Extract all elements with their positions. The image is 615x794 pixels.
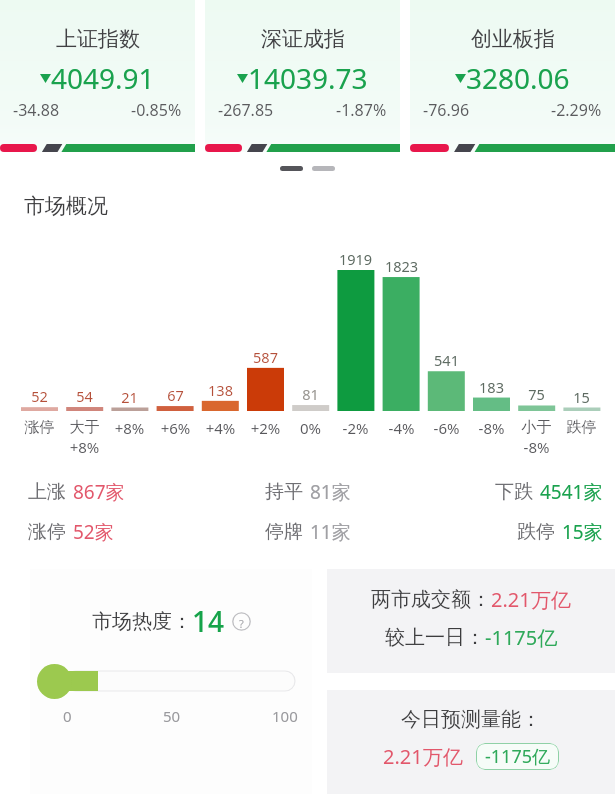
button[interactable]: 热度滑块 [36,663,73,700]
staticText: 50 [163,706,181,726]
staticText: -1.87% [336,99,387,121]
button[interactable]: 说明 [232,612,251,631]
button[interactable]: 跌停 [410,519,603,545]
staticText: 14 [192,602,225,640]
staticText: +4% [195,418,246,438]
staticText: 52家 [73,519,114,545]
staticText: 54 [61,386,108,406]
staticText: -6% [421,418,472,438]
staticText: 较上一日： [385,625,485,650]
staticText: 涨停 [28,520,66,544]
staticText: 大于 [59,418,110,437]
staticText: 市场概况 [24,193,108,219]
staticText: 跌停 [556,418,607,437]
staticText: 创业板指 [471,26,555,52]
staticText: 1823 [378,256,425,276]
staticText: 深证成指 [261,26,345,52]
staticText: 市场热度： [92,609,192,634]
staticText: 停牌 [265,520,303,544]
staticText: 今日预测量能： [401,707,541,732]
staticText: -34.88 [13,99,60,121]
button[interactable]: 创业板指 [410,0,615,152]
staticText: -8% [466,418,517,438]
staticText: -1175亿 [485,744,550,769]
staticText: 两市成交额： [371,587,491,612]
staticText: 下跌 [495,480,533,504]
staticText: +2% [240,418,291,438]
staticText: +8% [104,418,155,438]
button[interactable]: 上证指数 [0,0,195,152]
button[interactable]: Page 1 [280,166,303,171]
staticText: +8% [59,437,110,457]
staticText: 183 [468,377,515,397]
staticText: 15家 [562,519,603,545]
staticText: 21 [106,387,153,407]
staticText: -4% [376,418,427,438]
staticText: -8% [511,437,562,457]
staticText: 587 [242,347,289,367]
staticText: -76.96 [423,99,470,121]
staticText: 0% [285,418,336,438]
button[interactable]: Page 2 [312,166,335,171]
staticText: 涨停 [14,418,65,437]
staticText: ? [232,616,251,631]
staticText: 3280.06 [466,59,570,97]
staticText: -2.29% [551,99,602,121]
staticText: 67 [152,385,199,405]
button[interactable]: 持平 [205,479,410,505]
staticText: 867家 [73,479,125,505]
button[interactable]: 深证成指 [205,0,400,152]
staticText: 0 [63,706,72,726]
staticText: -2% [330,418,381,438]
staticText: 14039.73 [248,59,368,97]
button[interactable]: 市场热度： [30,569,312,794]
staticText: 跌停 [517,520,555,544]
staticText: 541 [423,350,470,370]
staticText: 81家 [310,479,351,505]
staticText: 15 [558,387,605,407]
staticText: 138 [197,380,244,400]
staticText: 上涨 [28,480,66,504]
staticText: 小于 [511,418,562,437]
staticText: 1919 [332,249,379,269]
staticText: 100 [272,706,298,726]
staticText: 81 [287,384,334,404]
button[interactable]: 下跌 [410,479,603,505]
staticText: 2.21万亿 [491,586,571,613]
button[interactable]: 今日预测量能： [327,690,615,794]
staticText: 75 [513,384,560,404]
button[interactable]: 上涨 [28,479,205,505]
button[interactable]: 涨停 [28,519,205,545]
button[interactable]: 停牌 [205,519,410,545]
staticText: 持平 [265,480,303,504]
staticText: -267.85 [218,99,274,121]
staticText: 上证指数 [56,26,140,52]
staticText: 2.21万亿 [383,743,463,770]
staticText: 4541家 [540,479,603,505]
staticText: 4049.91 [51,59,155,97]
staticText: -1175亿 [485,624,558,651]
staticText: -0.85% [131,99,182,121]
staticText: 52 [16,386,63,406]
button[interactable]: 两市成交额： [327,569,615,673]
staticText: +6% [150,418,201,438]
staticText: 11家 [310,519,351,545]
